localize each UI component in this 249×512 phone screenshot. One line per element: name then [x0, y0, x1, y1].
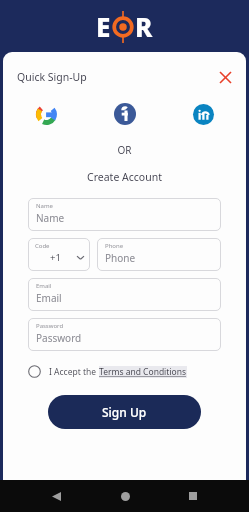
staticText: Create Account — [3, 170, 246, 184]
button[interactable]: Sign up with Facebook — [112, 101, 138, 127]
button[interactable]: Code — [28, 238, 90, 271]
staticText: Terms and Conditions — [99, 366, 187, 378]
button[interactable]: Home — [112, 483, 138, 509]
staticText: Code — [35, 242, 50, 250]
staticText: R — [135, 9, 153, 44]
staticText: Email — [36, 282, 52, 290]
button[interactable]: Close — [214, 66, 236, 88]
staticText: Phone — [105, 251, 136, 265]
button[interactable]: Password — [28, 318, 221, 351]
button[interactable]: I Accept the — [28, 365, 221, 378]
staticText: Name — [36, 211, 65, 225]
staticText: Email — [36, 291, 62, 305]
staticText: Password — [36, 322, 64, 330]
staticText: I Accept the — [49, 366, 99, 378]
button[interactable]: Sign up with Google — [33, 101, 59, 127]
button[interactable]: Recent apps — [180, 483, 206, 509]
button[interactable]: Sign Up — [48, 395, 201, 429]
staticText: OR — [3, 143, 246, 157]
staticText: Password — [36, 331, 82, 345]
button[interactable]: Phone — [97, 238, 221, 271]
button[interactable]: Email — [28, 278, 221, 311]
button[interactable]: Back — [43, 483, 69, 509]
staticText: Name — [36, 202, 53, 210]
staticText: Sign Up — [102, 404, 147, 420]
staticText: Quick Sign-Up — [17, 70, 87, 84]
staticText: E — [96, 9, 111, 44]
button[interactable]: Name — [28, 198, 221, 231]
staticText: +1 — [50, 251, 61, 264]
staticText: Phone — [105, 242, 124, 250]
button[interactable]: Sign up with LinkedIn — [190, 101, 216, 127]
